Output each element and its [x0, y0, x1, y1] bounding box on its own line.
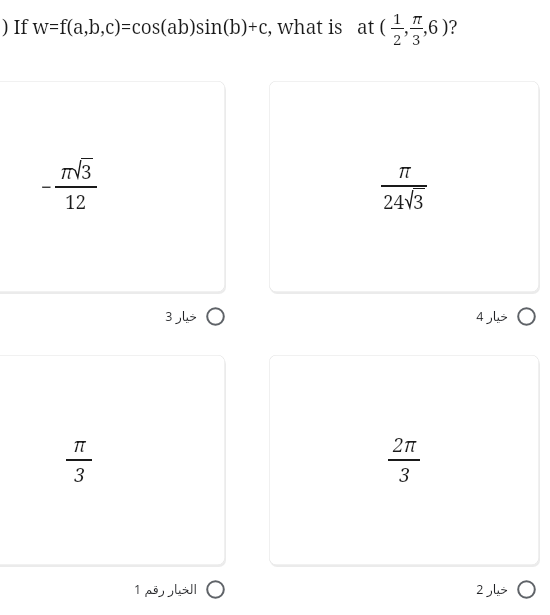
other: خيار 3: [206, 307, 225, 326]
staticText: 3: [413, 189, 424, 215]
staticText: 12: [65, 189, 87, 215]
staticText: π: [412, 8, 422, 28]
staticText: at (: [357, 14, 386, 40]
staticText: π: [73, 432, 86, 458]
staticText: ,6: [423, 14, 439, 40]
staticText: 3: [412, 29, 421, 49]
staticText: −: [41, 174, 53, 200]
button[interactable]: 2π: [269, 355, 539, 565]
staticText: 3: [74, 462, 85, 488]
other: الخيار رقم 1: [206, 580, 225, 599]
button[interactable]: π: [0, 355, 225, 565]
staticText: 3: [81, 159, 92, 185]
staticText: الخيار رقم 1: [134, 581, 197, 598]
button[interactable]: خيار 2: [269, 572, 539, 606]
staticText: )?: [442, 14, 458, 40]
staticText: خيار 2: [476, 581, 508, 598]
staticText: خيار 3: [165, 308, 197, 325]
staticText: π: [398, 158, 411, 184]
staticText: خيار 4: [476, 308, 508, 325]
staticText: 3: [399, 462, 410, 488]
staticText: 1: [393, 8, 402, 28]
button[interactable]: −: [0, 81, 225, 292]
button[interactable]: الخيار رقم 1: [0, 572, 228, 606]
staticText: π: [60, 159, 73, 185]
staticText: 2π: [393, 432, 416, 458]
button[interactable]: خيار 3: [0, 299, 228, 333]
other: خيار 2: [517, 580, 536, 599]
staticText: ,: [404, 14, 409, 40]
other: خيار 4: [517, 307, 536, 326]
staticText: 2: [393, 29, 402, 49]
button[interactable]: π: [269, 81, 539, 292]
staticText: ) If w=f(a,b,c)=cos(ab)sin(b)+c, what is: [2, 14, 343, 40]
staticText: 24: [383, 189, 405, 215]
button[interactable]: خيار 4: [269, 299, 539, 333]
